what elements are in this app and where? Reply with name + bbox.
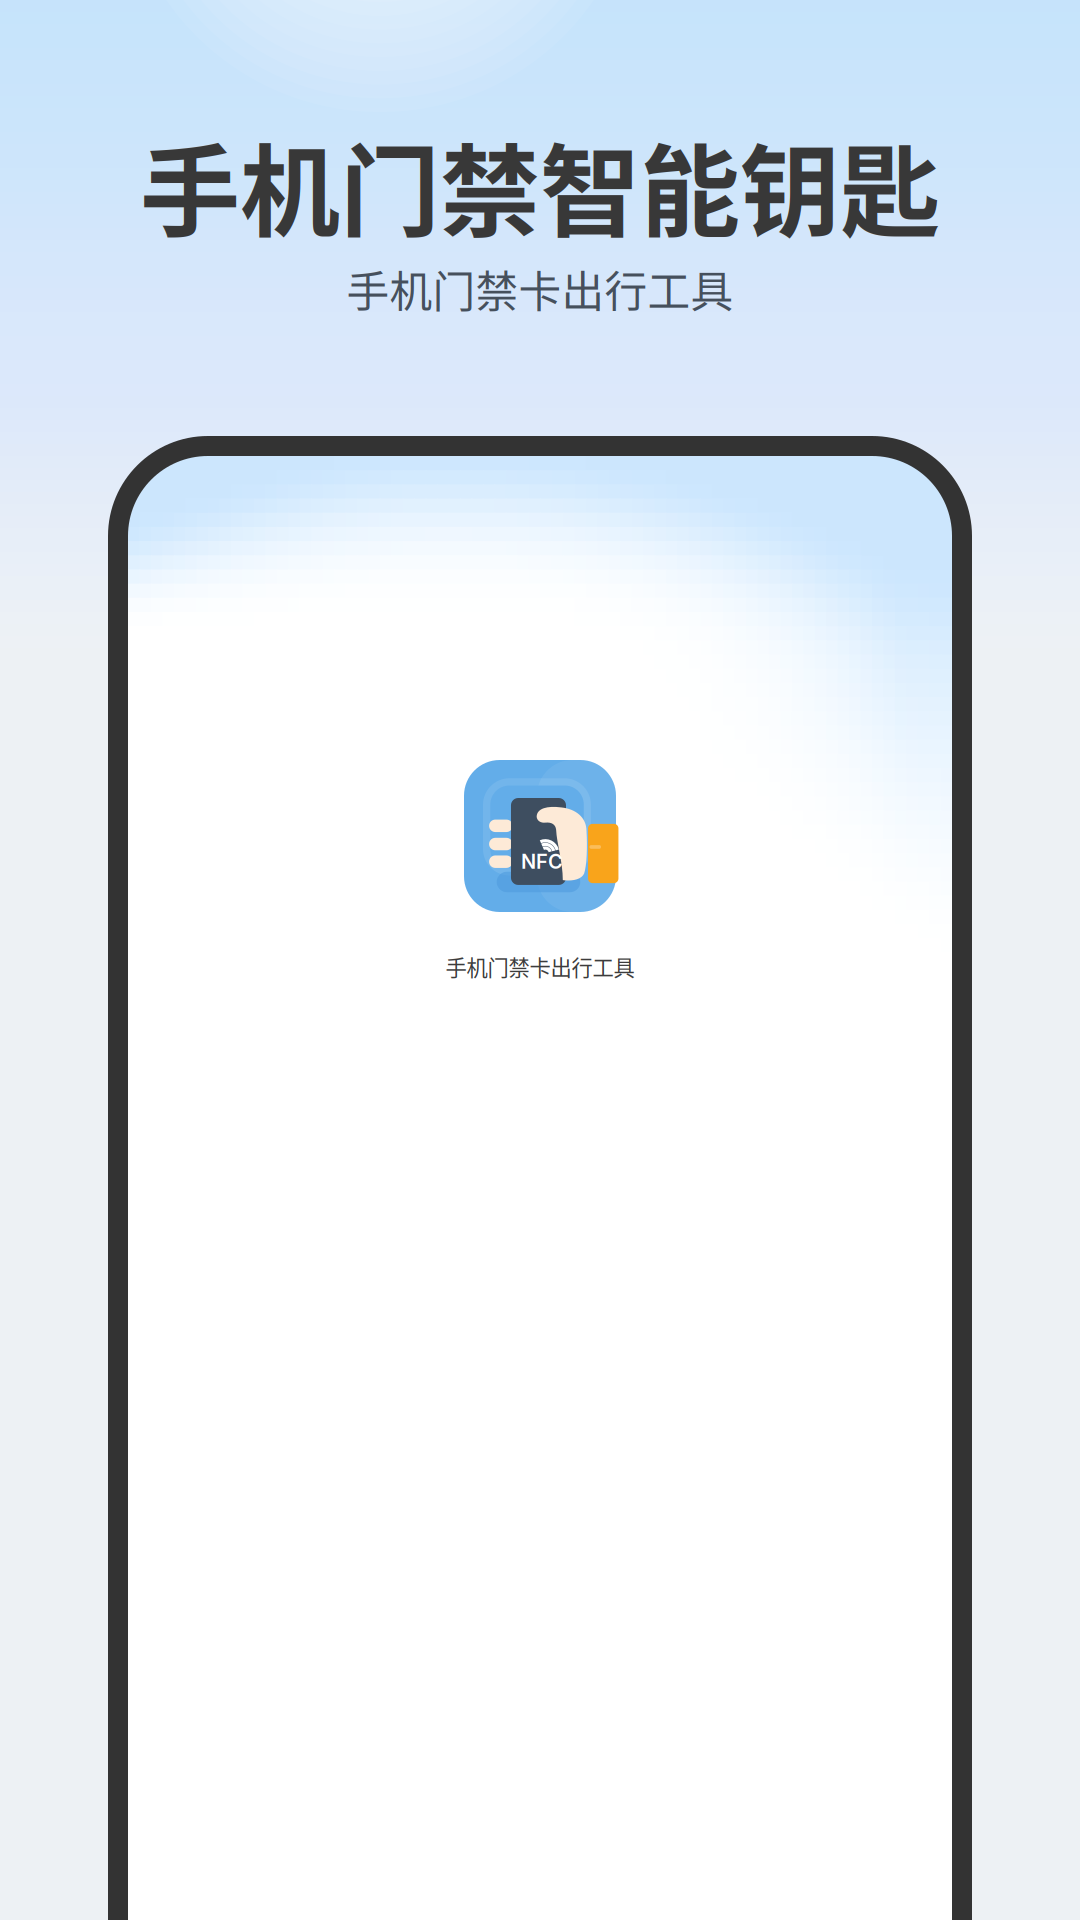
staticText: 手机门禁卡出行工具 [445, 951, 634, 982]
staticText: 手机门禁智能钥匙 [140, 113, 940, 257]
staticText: NFC [521, 849, 563, 874]
button[interactable]: NFC [108, 760, 972, 982]
staticText: 手机门禁卡出行工具 [346, 258, 733, 320]
